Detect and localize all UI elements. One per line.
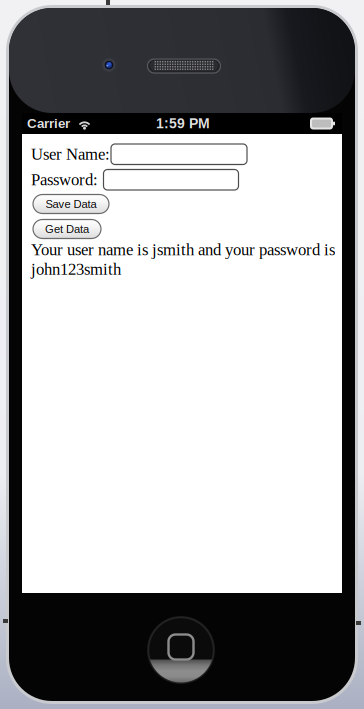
button[interactable]: Text field: [111, 144, 247, 164]
button[interactable]: Text field: [103, 169, 238, 190]
staticText: Your user name is jsmith and your passwo…: [31, 240, 335, 278]
button[interactable]: Get Data: [33, 219, 101, 238]
staticText: 1:59 PM: [156, 116, 210, 131]
button[interactable]: Save Data: [33, 194, 109, 213]
staticText: Password:: [31, 170, 98, 189]
staticText: Get Data: [45, 223, 89, 235]
staticText: User Name:: [31, 145, 110, 163]
staticText: Carrier: [27, 116, 70, 131]
button[interactable]: Home: [147, 616, 215, 684]
staticText: Save Data: [45, 198, 96, 210]
